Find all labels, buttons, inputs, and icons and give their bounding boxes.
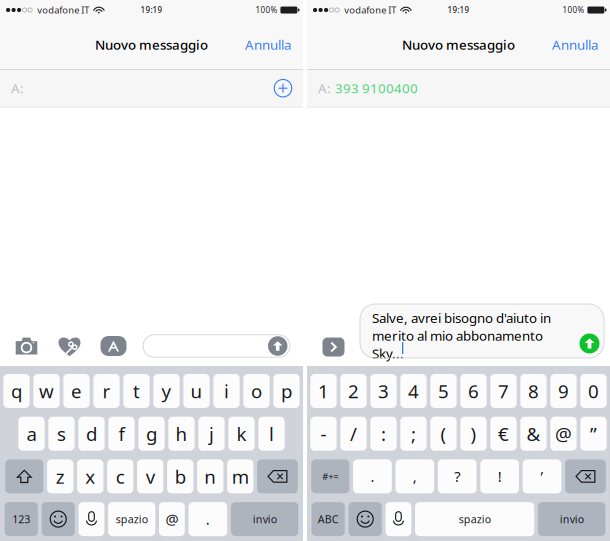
button[interactable]: @ (550, 417, 577, 451)
button[interactable]: ? (438, 459, 477, 493)
staticText: ABC (318, 512, 339, 526)
button[interactable]: 8 (520, 374, 547, 408)
button[interactable]: i (213, 374, 240, 408)
staticText: l (269, 421, 274, 446)
button[interactable]: Delete (257, 459, 298, 493)
button[interactable]: b (167, 459, 193, 493)
staticText: vodafone IT (37, 4, 89, 16)
button[interactable]: 0 (580, 374, 607, 408)
staticText: 0 (588, 379, 599, 403)
button[interactable]: x (77, 459, 103, 493)
button[interactable]: ) (460, 417, 487, 451)
staticText: #+= (322, 470, 338, 483)
button[interactable]: n (197, 459, 223, 493)
button[interactable]: t (123, 374, 150, 408)
button[interactable]: Dictation (79, 502, 104, 536)
button[interactable]: d (78, 417, 105, 451)
button[interactable]: z (47, 459, 73, 493)
button[interactable]: e (63, 374, 90, 408)
button[interactable]: c (107, 459, 133, 493)
button[interactable]: j (198, 417, 225, 451)
button[interactable]: Dictation (385, 502, 411, 536)
button[interactable]: / (340, 417, 367, 451)
button[interactable]: - (310, 417, 337, 451)
button[interactable]: 2 (340, 374, 367, 408)
button[interactable]: Send (267, 335, 289, 357)
button[interactable]: ; (400, 417, 427, 451)
staticText: A: (11, 79, 24, 97)
button[interactable]: r (93, 374, 120, 408)
button[interactable]: m (227, 459, 253, 493)
staticText: a (26, 421, 36, 446)
button[interactable]: Annulla (538, 30, 610, 59)
staticText: d (86, 421, 97, 446)
button[interactable]: w (33, 374, 60, 408)
button[interactable]: s (48, 417, 75, 451)
staticText: . (206, 509, 210, 529)
button[interactable]: #+= (311, 459, 349, 493)
button[interactable]: Expand (307, 337, 360, 357)
button[interactable]: @ (159, 502, 185, 536)
button[interactable]: ” (580, 417, 607, 451)
button[interactable]: 9 (550, 374, 577, 408)
button[interactable]: Emoji (42, 502, 75, 536)
button[interactable]: Emoji (348, 502, 382, 536)
button[interactable]: 7 (490, 374, 517, 408)
staticText: 19:19 (140, 5, 162, 15)
button[interactable]: y (153, 374, 180, 408)
button[interactable]: Shift (5, 459, 43, 493)
button[interactable]: g (138, 417, 165, 451)
button[interactable]: l (258, 417, 285, 451)
button[interactable]: v (137, 459, 163, 493)
button[interactable]: € (490, 417, 517, 451)
button[interactable]: p (273, 374, 300, 408)
button[interactable]: Digital Touch (48, 327, 91, 365)
button[interactable]: Camera (5, 327, 48, 365)
button[interactable]: : (370, 417, 397, 451)
staticText: b (175, 464, 186, 489)
button[interactable]: 6 (460, 374, 487, 408)
button[interactable]: . (188, 502, 227, 536)
staticText: . (370, 467, 374, 486)
button[interactable]: a (18, 417, 45, 451)
button[interactable]: Send (578, 332, 601, 355)
staticText: : (381, 421, 386, 446)
button[interactable]: o (243, 374, 270, 408)
staticText: ! (498, 467, 502, 486)
staticText: 5 (438, 379, 449, 403)
button[interactable]: q (3, 374, 30, 408)
button[interactable]: Delete (565, 459, 606, 493)
button[interactable]: , (395, 459, 434, 493)
button[interactable]: f (108, 417, 135, 451)
button[interactable]: k (228, 417, 255, 451)
staticText: 393 9100400 (335, 79, 418, 97)
button[interactable]: spazio (108, 502, 155, 536)
button[interactable]: Annulla (231, 30, 303, 59)
button[interactable]: 1 (310, 374, 337, 408)
button[interactable]: 5 (430, 374, 457, 408)
staticText: - (320, 421, 326, 446)
staticText: 6 (468, 379, 479, 403)
button[interactable]: . (353, 459, 392, 493)
button[interactable]: & (520, 417, 547, 451)
staticText: v (146, 464, 155, 489)
staticText: q (11, 379, 22, 403)
staticText: n (204, 464, 216, 489)
button[interactable]: 4 (400, 374, 427, 408)
staticText: 4 (408, 379, 419, 403)
button[interactable]: 123 (5, 502, 38, 536)
staticText: Annulla (245, 36, 291, 53)
staticText: z (56, 464, 65, 489)
button[interactable]: u (183, 374, 210, 408)
button[interactable]: ! (480, 459, 519, 493)
button[interactable]: invio (538, 502, 605, 536)
button[interactable]: ( (430, 417, 457, 451)
button[interactable]: Add contact (266, 71, 300, 105)
button[interactable]: invio (231, 502, 298, 536)
button[interactable]: ABC (311, 502, 345, 536)
button[interactable]: App Store (91, 327, 136, 365)
button[interactable]: ’ (523, 459, 561, 493)
button[interactable]: 3 (370, 374, 397, 408)
button[interactable]: h (168, 417, 195, 451)
button[interactable]: spazio (415, 502, 534, 536)
